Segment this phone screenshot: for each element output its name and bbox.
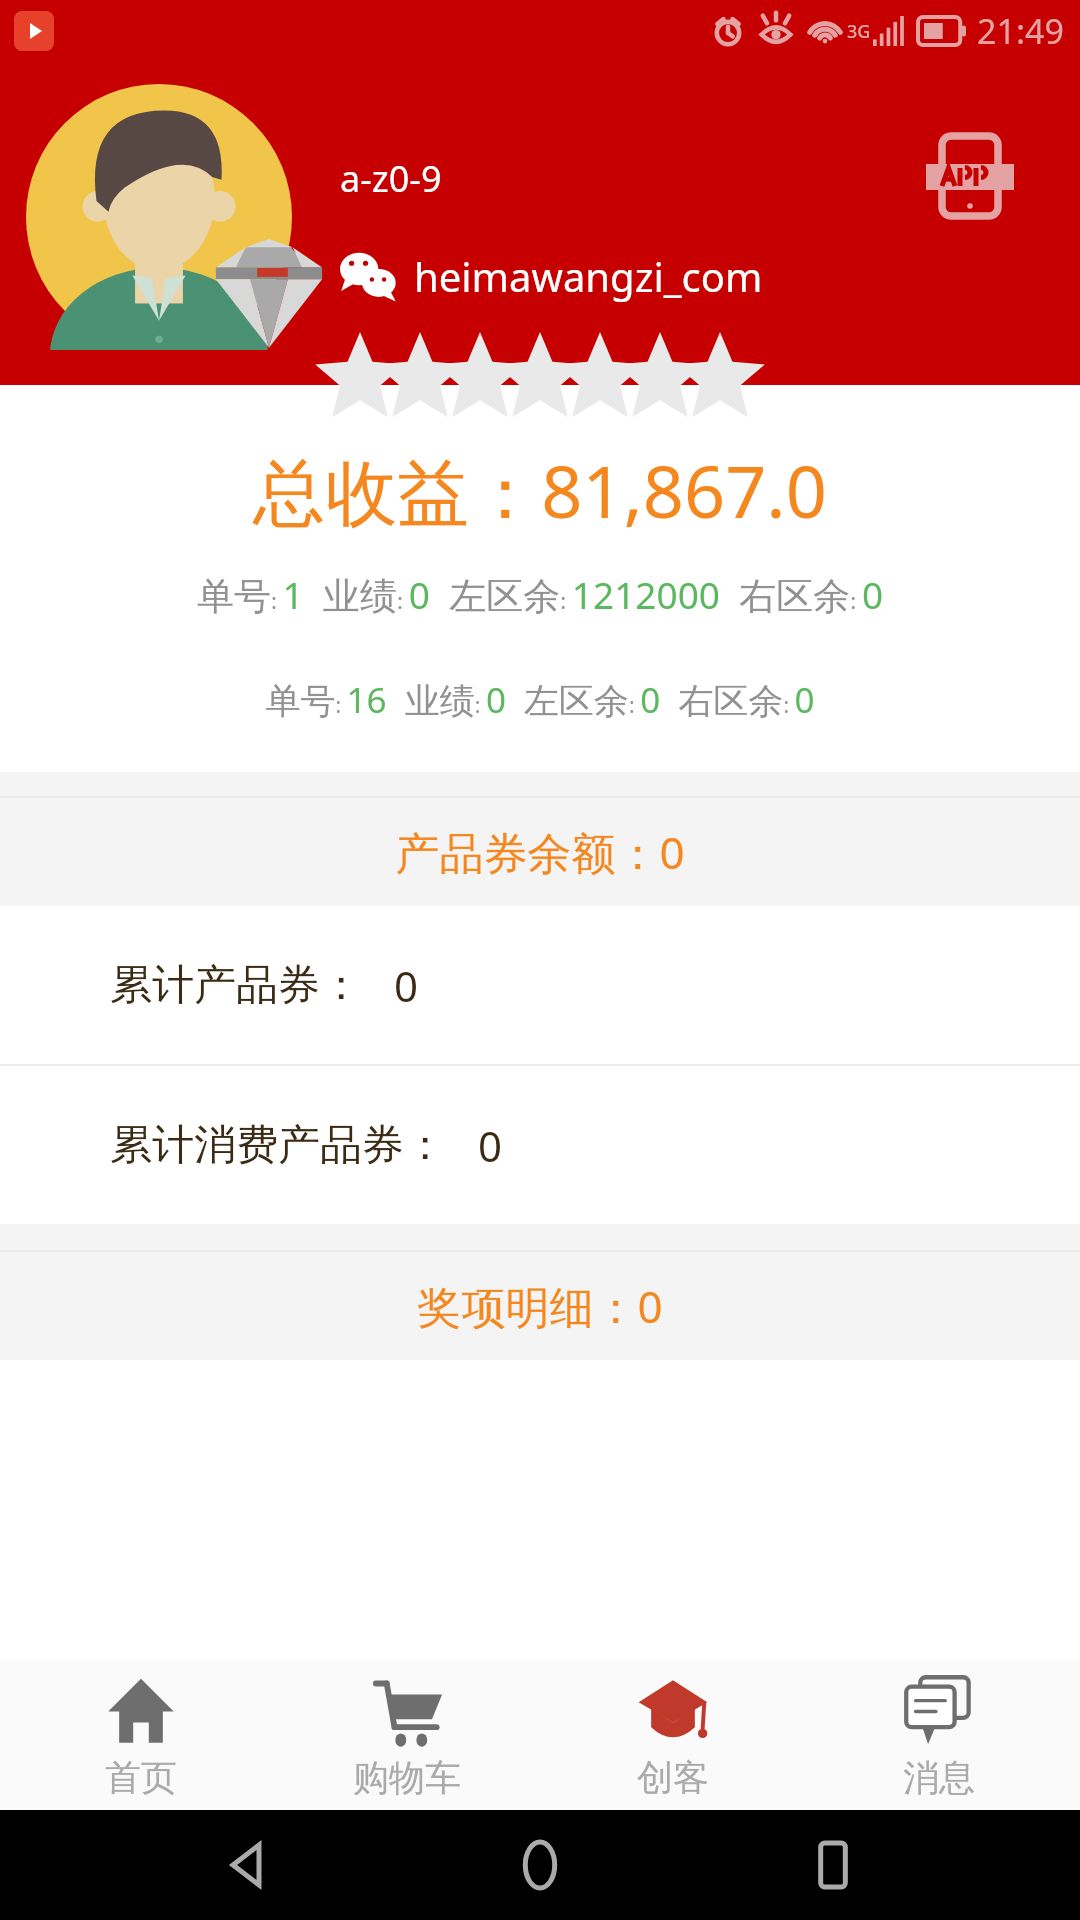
staticText: 0: [394, 957, 419, 1014]
button[interactable]: Home: [495, 1820, 585, 1910]
staticText: 总收益：81,867.0: [0, 441, 1080, 539]
button[interactable]: 消息: [814, 1671, 1064, 1800]
button[interactable]: 累计消费产品券：: [0, 1066, 1080, 1224]
button[interactable]: 产品券余额：0: [0, 798, 1080, 906]
staticText: 创客: [637, 1755, 709, 1800]
button[interactable]: 创客: [548, 1671, 798, 1800]
staticText: 首页: [105, 1755, 177, 1800]
staticText: 累计消费产品券：: [110, 1119, 446, 1172]
button[interactable]: 累计产品券：: [0, 906, 1080, 1064]
staticText: 消息: [903, 1755, 975, 1800]
staticText: 奖项明细：0: [417, 1276, 663, 1336]
button[interactable]: 单号: 1 业绩: 0 左区余: 1212000 右区余: 0: [0, 569, 1080, 620]
staticText: 0: [478, 1117, 503, 1174]
staticText: a-z0-9: [340, 154, 442, 203]
button[interactable]: APP download: [920, 126, 1020, 226]
staticText: 购物车: [353, 1755, 461, 1800]
button[interactable]: 购物车: [282, 1671, 532, 1800]
button[interactable]: 奖项明细：0: [0, 1252, 1080, 1360]
staticText: 产品券余额：0: [395, 822, 685, 882]
staticText: 累计产品券：: [110, 959, 362, 1012]
button[interactable]: 单号: 16 业绩: 0 左区余: 0 右区余: 0: [0, 676, 1080, 724]
button[interactable]: 首页: [16, 1671, 266, 1800]
button[interactable]: Recent apps: [788, 1820, 878, 1910]
staticText: heimawangzi_com: [414, 249, 763, 303]
staticText: 3G: [847, 19, 871, 44]
button[interactable]: Back: [203, 1820, 293, 1910]
staticText: 21:49: [977, 8, 1064, 54]
